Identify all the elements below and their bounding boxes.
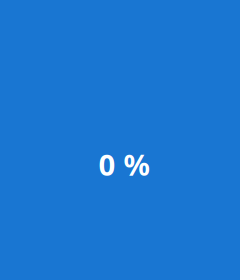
- staticText: 0 %: [98, 145, 149, 184]
